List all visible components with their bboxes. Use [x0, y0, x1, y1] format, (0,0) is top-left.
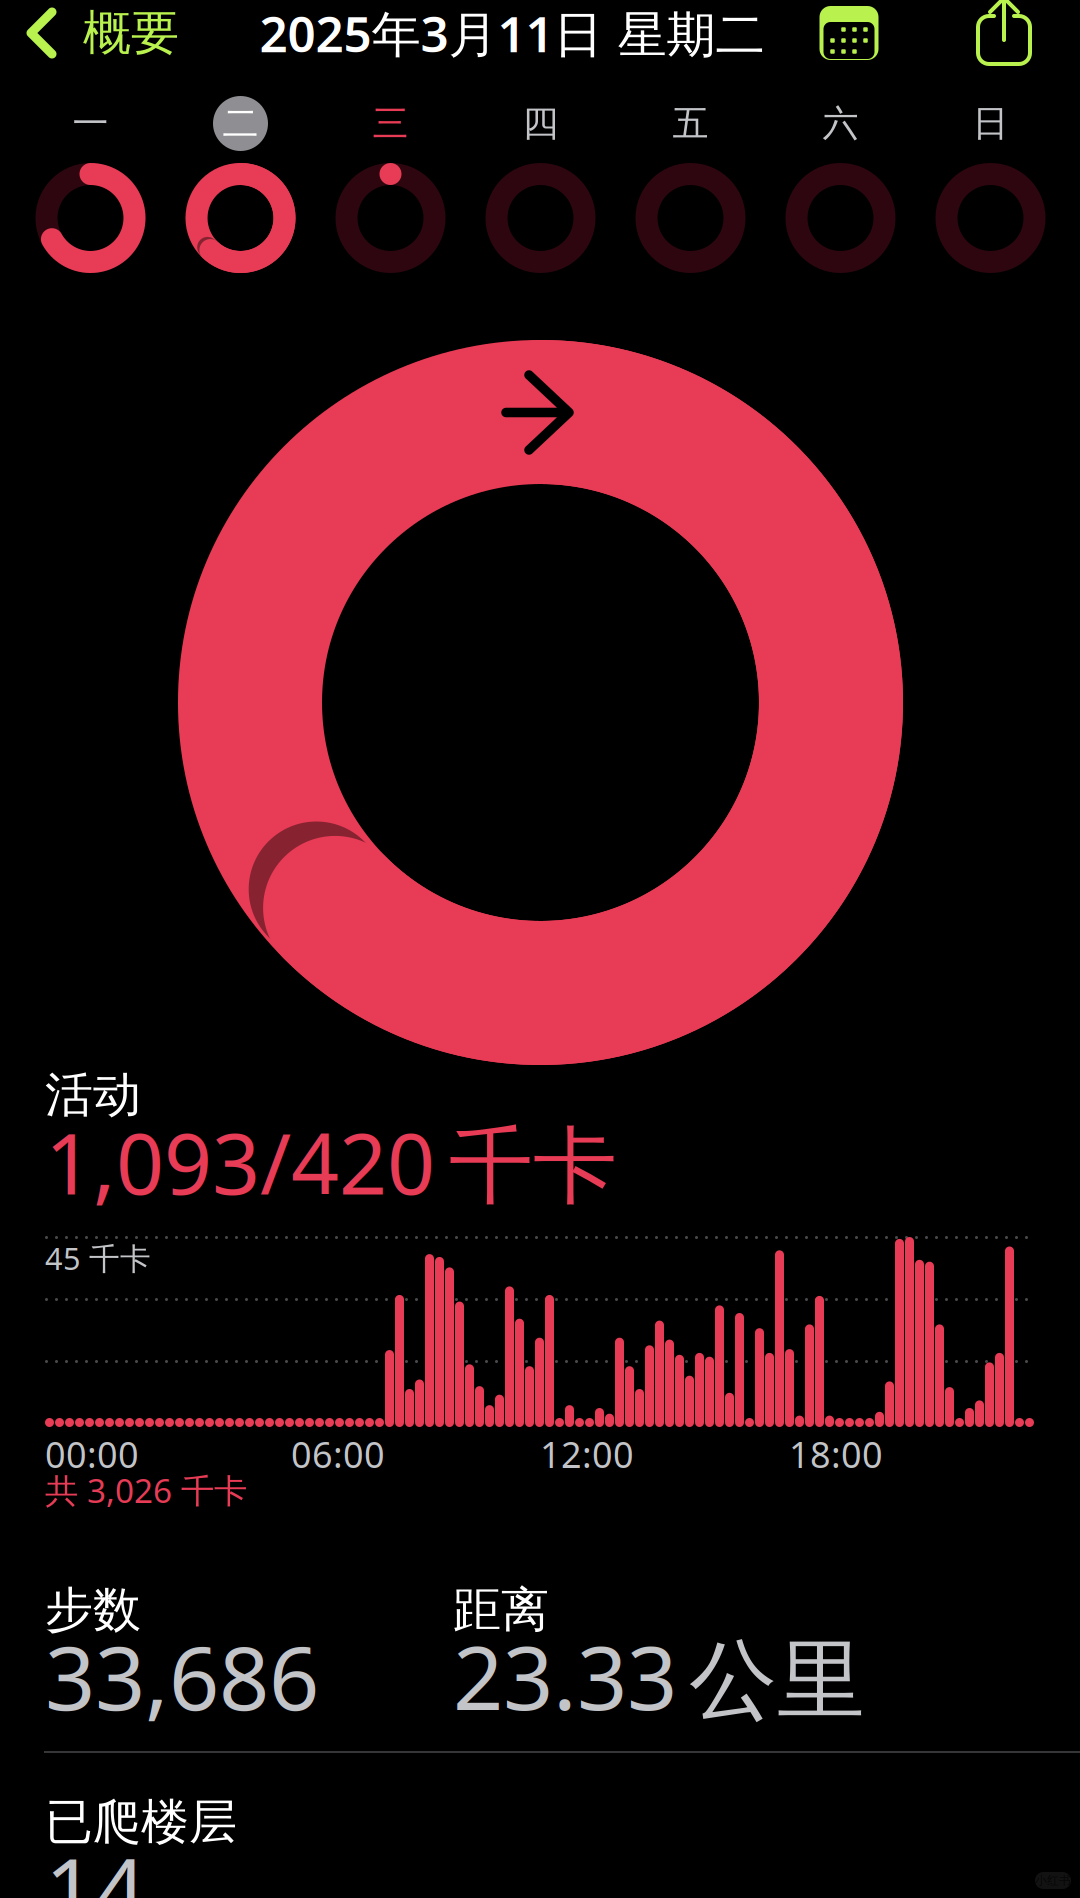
staticText: 四: [522, 101, 558, 146]
staticText: 公里: [689, 1627, 865, 1735]
staticText: 2025年3月11日 星期二: [259, 0, 764, 66]
button[interactable]: 六: [765, 96, 915, 273]
staticText: 共 3,026 千卡: [45, 1468, 247, 1512]
staticText: 06:00: [291, 1430, 385, 1478]
staticText: 12:00: [540, 1430, 634, 1478]
staticText: 步数: [45, 1580, 141, 1639]
button[interactable]: 概要: [0, 0, 195, 66]
staticText: 14: [45, 1830, 145, 1898]
button[interactable]: 四: [465, 96, 615, 273]
staticText: 二: [222, 101, 258, 146]
button[interactable]: 五: [615, 96, 765, 273]
staticText: 日: [972, 101, 1008, 146]
button[interactable]: Share: [961, 0, 1047, 66]
staticText: 三: [372, 101, 408, 146]
staticText: 45 千卡: [45, 1238, 151, 1278]
staticText: 18:00: [789, 1430, 883, 1478]
staticText: 已爬楼层: [45, 1792, 237, 1851]
button[interactable]: 三: [315, 96, 465, 273]
button[interactable]: 日: [915, 96, 1065, 273]
staticText: 活动: [45, 1065, 141, 1124]
staticText: 概要: [83, 3, 179, 62]
staticText: 小红书: [1035, 1873, 1071, 1888]
staticText: 六: [822, 101, 858, 146]
button[interactable]: 一: [15, 96, 165, 273]
staticText: 33,686: [45, 1618, 319, 1734]
staticText: 一: [72, 101, 108, 146]
staticText: 23.33: [453, 1617, 677, 1734]
staticText: 1,093/420: [45, 1106, 435, 1217]
staticText: 距离: [453, 1580, 549, 1639]
staticText: 千卡: [449, 1115, 617, 1218]
button[interactable]: 二: [165, 96, 315, 273]
button[interactable]: Calendar: [806, 0, 892, 66]
staticText: 五: [672, 101, 708, 146]
staticText: 00:00: [45, 1430, 139, 1478]
